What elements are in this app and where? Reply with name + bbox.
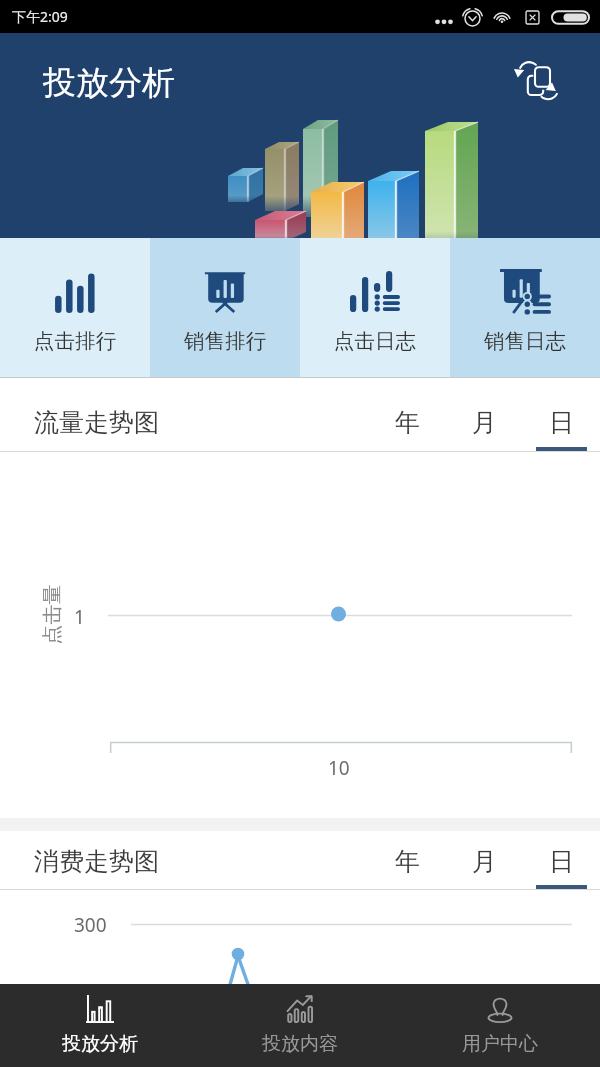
button[interactable]: 月 — [446, 378, 523, 451]
staticText: 点击排行 — [34, 328, 116, 354]
button[interactable]: 投放内容 — [200, 984, 400, 1067]
button[interactable]: 月 — [446, 831, 523, 889]
button[interactable]: 用户中心 — [400, 984, 600, 1067]
staticText: 销售排行 — [184, 328, 266, 354]
staticText: 下午2:09 — [12, 7, 68, 26]
button[interactable]: 点击日志 — [300, 238, 450, 377]
staticText: 点击量 — [39, 584, 64, 644]
button[interactable]: 年 — [369, 831, 446, 889]
staticText: 300 — [74, 912, 107, 938]
staticText: 月 — [472, 846, 497, 877]
staticText: 年 — [395, 407, 420, 438]
staticText: 用户中心 — [462, 1032, 538, 1056]
staticText: 投放分析 — [43, 62, 175, 104]
button[interactable]: 投放分析 — [0, 984, 200, 1067]
staticText: 消费走势图 — [34, 846, 159, 877]
staticText: 投放内容 — [262, 1032, 338, 1056]
staticText: 日 — [549, 407, 574, 438]
button[interactable]: 日 — [523, 378, 600, 451]
button[interactable]: 销售日志 — [450, 238, 600, 377]
staticText: 销售日志 — [484, 328, 566, 354]
button[interactable]: 销售排行 — [150, 238, 300, 377]
staticText: 月 — [472, 407, 497, 438]
staticText: 点击日志 — [334, 328, 416, 354]
staticText: 10 — [328, 755, 350, 781]
staticText: 流量走势图 — [34, 407, 159, 438]
button[interactable]: 点击排行 — [0, 238, 150, 377]
staticText: 1 — [74, 604, 85, 630]
staticText: 投放分析 — [62, 1032, 138, 1056]
button[interactable]: 年 — [369, 378, 446, 451]
staticText: 年 — [395, 846, 420, 877]
button[interactable]: Rotate screen — [504, 51, 562, 109]
button[interactable]: 日 — [523, 831, 600, 889]
staticText: 日 — [549, 846, 574, 877]
